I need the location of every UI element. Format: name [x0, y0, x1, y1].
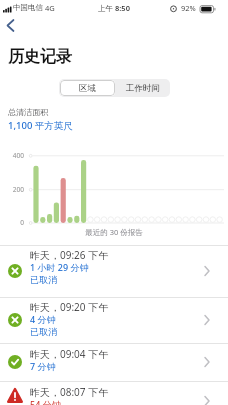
staticText: 92% — [181, 3, 196, 13]
staticText: 已取消 — [30, 274, 57, 285]
button[interactable]: 工作时间 — [115, 79, 170, 97]
staticText: 昨天，09:04 下午 — [30, 347, 109, 361]
staticText: 工作时间 — [126, 83, 160, 94]
staticText: 历史记录 — [8, 47, 72, 67]
staticText: 总清洁面积 — [8, 107, 48, 117]
staticText: 4G — [45, 3, 55, 13]
button[interactable] — [4, 18, 18, 33]
staticText: 54 分钟 — [30, 398, 61, 405]
staticText: 中国电信 — [13, 3, 43, 12]
staticText: 0 — [0, 218, 24, 227]
staticText: 昨天，09:26 下午 — [30, 248, 109, 262]
staticText: 200 — [0, 185, 24, 194]
button[interactable]: 区域 — [60, 80, 115, 96]
staticText: 已取消 — [30, 326, 57, 337]
button[interactable]: 昨天，09:20 下午 — [0, 297, 228, 343]
staticText: 上午 8:50 — [0, 3, 228, 13]
button[interactable]: 昨天，09:04 下午 — [0, 343, 228, 381]
staticText: 昨天，08:07 下午 — [30, 385, 109, 399]
staticText: 1,100 平方英尺 — [8, 119, 73, 132]
staticText: 1 小时 29 分钟 — [30, 261, 89, 273]
staticText: 4 分钟 — [30, 313, 56, 325]
staticText: 7 分钟 — [30, 360, 56, 372]
button[interactable]: 昨天，08:07 下午 — [0, 381, 228, 405]
staticText: 昨天，09:20 下午 — [30, 300, 109, 314]
staticText: 400 — [0, 151, 24, 160]
staticText: 最近的 30 份报告 — [0, 227, 228, 237]
button[interactable]: 昨天，09:26 下午 — [0, 245, 228, 297]
staticText: 区域 — [79, 83, 96, 94]
